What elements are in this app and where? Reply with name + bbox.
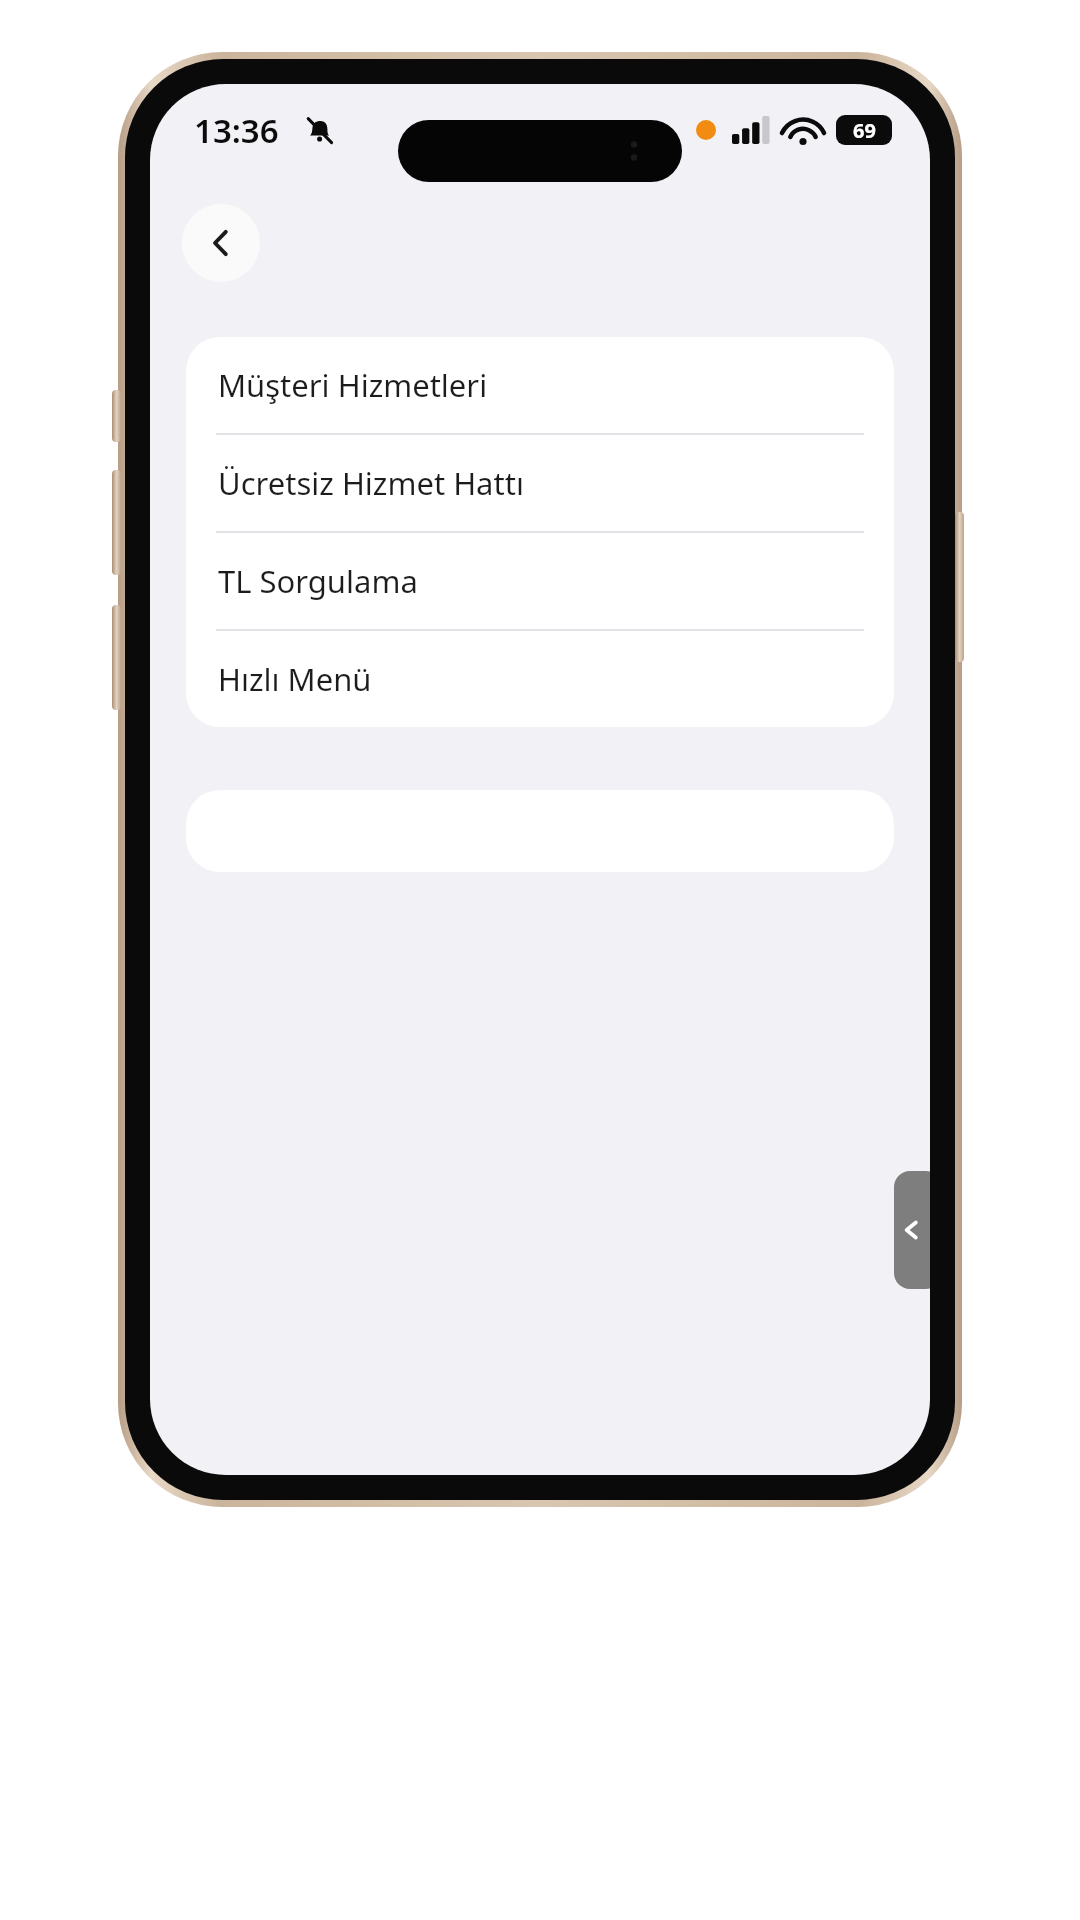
button[interactable]: Back gesture — [894, 1171, 930, 1289]
staticText: Müşteri Hizmetleri — [218, 364, 488, 406]
button[interactable]: Back — [182, 204, 260, 282]
button[interactable]: TL Sorgulama — [186, 533, 894, 629]
staticText: TL Sorgulama — [218, 560, 418, 602]
staticText: Hızlı Menü — [218, 658, 372, 700]
staticText: 69 — [853, 117, 876, 144]
staticText: 13:36 — [194, 108, 279, 153]
staticText: Ücretsiz Hizmet Hattı — [218, 462, 524, 504]
button[interactable]: Hızlı Menü — [186, 631, 894, 727]
button[interactable]: Ücretsiz Hizmet Hattı — [186, 435, 894, 531]
button[interactable]: Müşteri Hizmetleri — [186, 337, 894, 433]
